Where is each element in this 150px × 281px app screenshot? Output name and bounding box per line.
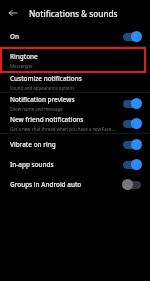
button[interactable]: Enabled (121, 138, 143, 151)
staticText: New friend notifications (10, 115, 84, 124)
staticText: On (10, 32, 20, 41)
button[interactable]: Back (6, 6, 20, 20)
button[interactable]: New friend notifications (0, 113, 150, 133)
staticText: Groups in Android auto (10, 180, 82, 189)
staticText: Vibrate on ring (10, 140, 56, 149)
button[interactable]: Ringtone (0, 47, 146, 73)
button[interactable]: In-app sounds (0, 154, 150, 174)
staticText: Customize notifications (10, 74, 82, 83)
button[interactable]: Enabled (121, 117, 143, 130)
staticText: Show name and message (10, 106, 63, 112)
staticText: Notification previews (10, 95, 75, 104)
staticText: Sound and appearance options (10, 85, 75, 91)
staticText: Get a new chat thread when you have a ne… (10, 126, 117, 132)
staticText: Messenger (10, 63, 33, 69)
staticText: In-app sounds (10, 160, 54, 169)
button[interactable]: Enabled (121, 30, 143, 43)
button[interactable]: Vibrate on ring (0, 134, 150, 154)
button[interactable]: Groups in Android auto (0, 174, 150, 194)
button[interactable]: Enabled (121, 158, 143, 171)
button[interactable]: Disabled (121, 178, 143, 191)
staticText: Notifications & sounds (29, 8, 118, 19)
button[interactable]: Notification previews (0, 93, 150, 113)
button[interactable]: Customize notifications (0, 73, 150, 92)
button[interactable]: On (0, 26, 150, 46)
button[interactable]: Enabled (121, 97, 143, 110)
staticText: Ringtone (10, 52, 38, 61)
